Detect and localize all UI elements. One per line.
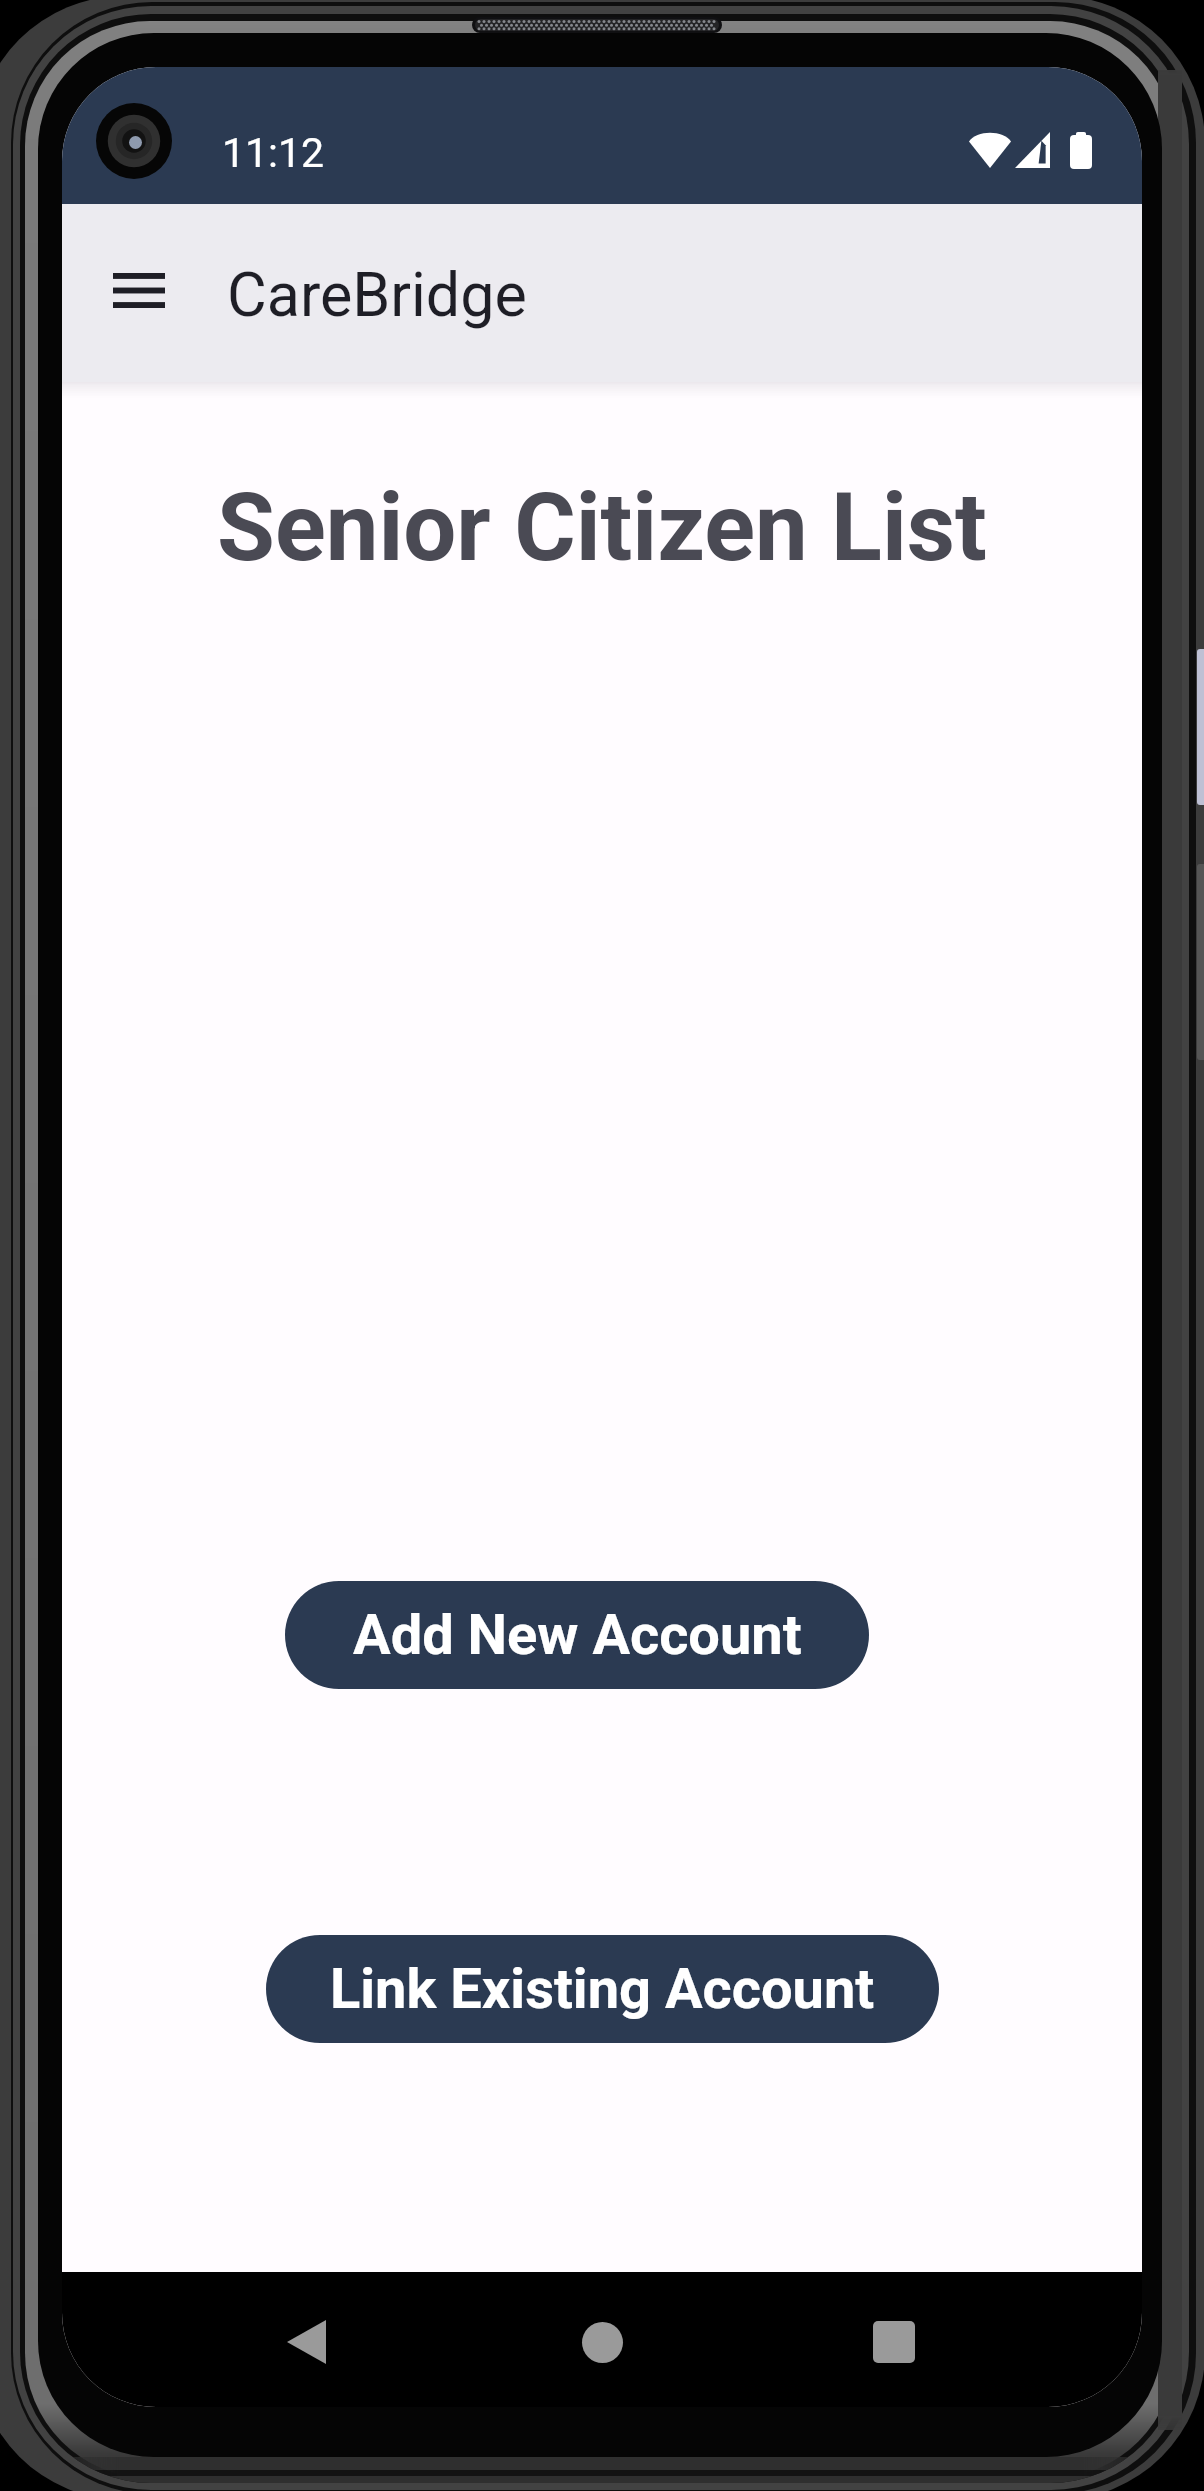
staticText: Add New Account (353, 1602, 802, 1668)
staticText: 11:12 (222, 129, 325, 177)
button[interactable]: Home (542, 2282, 662, 2402)
staticText: Senior Citizen List (62, 473, 1142, 583)
staticText: Link Existing Account (330, 1956, 875, 2022)
staticText: CareBridge (227, 259, 527, 330)
button[interactable]: Link Existing Account (266, 1935, 939, 2043)
button[interactable]: Add New Account (285, 1581, 869, 1689)
button[interactable]: Back (246, 2282, 366, 2402)
button[interactable]: Open navigation menu (91, 242, 187, 338)
button[interactable]: Recent apps (834, 2282, 954, 2402)
